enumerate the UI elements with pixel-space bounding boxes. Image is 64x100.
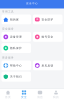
staticText: 更多服务 xyxy=(2,56,14,59)
staticText: 安全防护 xyxy=(41,18,53,21)
staticText: 首页 xyxy=(5,95,11,99)
button[interactable]: 安全防护 xyxy=(33,14,62,24)
staticText: 常用工具 xyxy=(2,10,14,13)
button[interactable]: 消息 xyxy=(32,89,48,100)
staticText: 帮助中心 xyxy=(10,64,22,67)
staticText: 安全服务 xyxy=(2,27,14,31)
staticText: 关于我们 xyxy=(10,75,22,78)
button[interactable]: 关于我们 xyxy=(1,72,31,82)
staticText: 账号安全 xyxy=(41,35,53,39)
staticText: 设备管理 xyxy=(10,35,22,39)
staticText: 我的 xyxy=(53,95,59,99)
staticText: 安全 xyxy=(21,95,27,99)
staticText: 我的家 xyxy=(10,18,19,21)
button[interactable]: 隐私保护 xyxy=(1,43,31,53)
button[interactable]: 账号安全 xyxy=(33,32,62,42)
button[interactable]: 我的 xyxy=(48,89,64,100)
button[interactable]: 意见反馈 xyxy=(33,60,62,70)
button[interactable]: 首页 xyxy=(0,89,16,100)
staticText: 意见反馈 xyxy=(41,64,53,67)
staticText: 隐私保护 xyxy=(10,46,22,50)
staticText: 消息 xyxy=(37,95,43,99)
button[interactable]: 设备管理 xyxy=(1,32,31,42)
button[interactable]: 安全 xyxy=(16,89,32,100)
button[interactable]: 帮助中心 xyxy=(1,60,31,70)
button[interactable]: 我的家 xyxy=(1,14,31,24)
staticText: 安全中心 xyxy=(26,2,38,5)
